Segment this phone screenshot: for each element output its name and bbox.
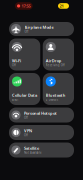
staticText: Bluetooth (46, 93, 66, 98)
button[interactable]: Airplane Mode (9, 22, 74, 36)
staticText: Off (24, 133, 28, 137)
staticText: 2 Devices (46, 98, 58, 101)
staticText: Satellite (24, 145, 39, 151)
staticText: Off (12, 63, 16, 67)
staticText: 17:55 (22, 3, 31, 9)
staticText: Airplane Mode (24, 24, 53, 30)
button[interactable]: Wi-Fi (9, 38, 40, 70)
staticText: Off (24, 30, 28, 33)
staticText: VPN (24, 128, 32, 133)
staticText: Wi-Fi (12, 58, 21, 63)
staticText: Cellular Data (12, 93, 37, 98)
staticText: AT&T (12, 98, 18, 101)
button[interactable]: Cellular Data (9, 73, 40, 105)
button[interactable]: Satellite (9, 142, 74, 157)
button[interactable]: Bluetooth (43, 73, 74, 105)
staticText: AirDrop (46, 58, 62, 63)
button[interactable]: AirDrop (43, 38, 74, 70)
staticText: Not Available (24, 151, 42, 154)
staticText: Personal Hotspot (24, 110, 57, 116)
button[interactable]: Personal Hotspot (9, 107, 74, 122)
staticText: Off (24, 116, 28, 119)
staticText: Receiving Off (46, 63, 65, 67)
staticText: 21 (60, 3, 64, 9)
button[interactable]: VPN (9, 125, 74, 140)
